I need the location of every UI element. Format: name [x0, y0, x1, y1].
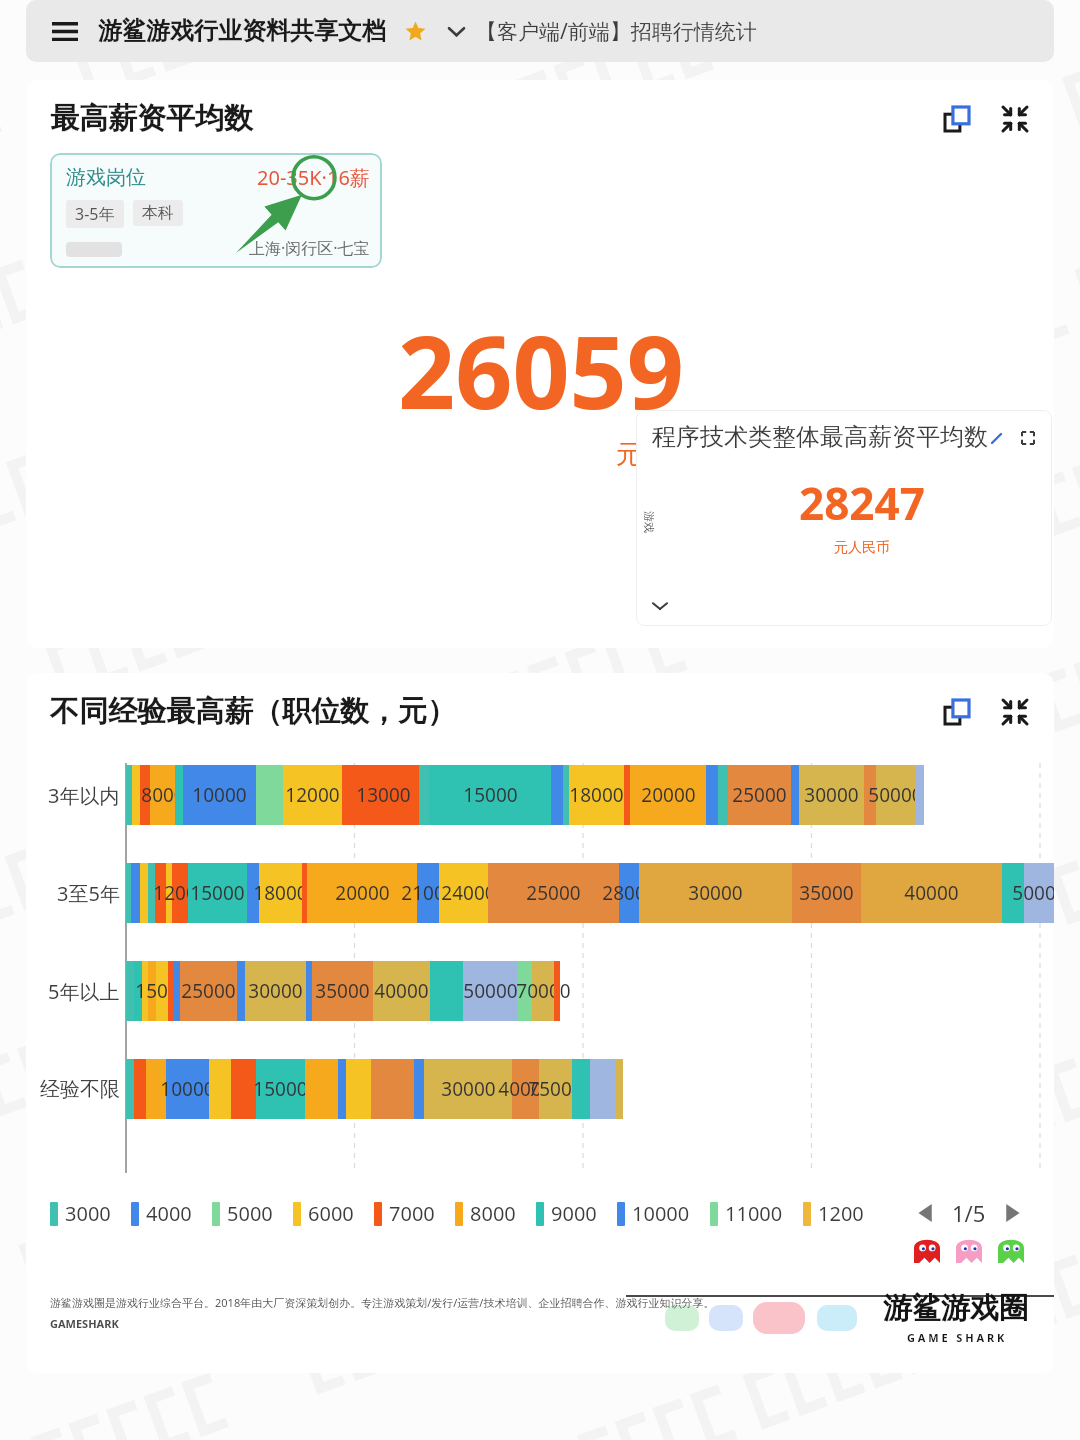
staticText: 25000 [181, 978, 236, 1004]
staticText: 元人民币 [834, 539, 890, 557]
button[interactable]: More options [442, 17, 470, 45]
staticText: 3000 [65, 1200, 111, 1227]
staticText: 35000 [315, 978, 370, 1004]
staticText: 10000 [632, 1200, 690, 1227]
staticText: 30000 [688, 880, 743, 906]
staticText: 75000 [528, 1076, 583, 1102]
staticText: 50000 [868, 782, 923, 808]
button[interactable]: Collapse [996, 693, 1034, 731]
staticText: 28000 [602, 880, 657, 906]
button[interactable]: 3000 [50, 1200, 131, 1227]
staticText: 5年以上 [48, 978, 120, 1005]
staticText: 20-35K·16薪 [257, 164, 370, 191]
staticText: 15000 [190, 880, 245, 906]
staticText: 9000 [551, 1200, 597, 1227]
button[interactable]: Menu [44, 10, 86, 52]
staticText: 24000 [441, 880, 496, 906]
staticText: 35000 [799, 880, 854, 906]
staticText: 游鲨游戏圈是游戏行业综合平台。2018年由大厂资深策划创办。专注游戏策划/发行/… [50, 1295, 715, 1310]
button[interactable]: Next page [994, 1195, 1030, 1231]
button[interactable]: Favorite [400, 16, 430, 46]
button[interactable]: 4000 [131, 1200, 212, 1227]
staticText: 最高薪资平均数 [50, 100, 253, 137]
staticText: 7000 [389, 1200, 435, 1227]
button[interactable]: Collapse [996, 100, 1034, 138]
staticText: 不同经验最高薪（职位数，元） [50, 693, 456, 730]
staticText: 游鲨游戏行业资料共享文档 [98, 16, 386, 46]
staticText: 12000 [153, 880, 208, 906]
button[interactable]: 10000 [617, 1200, 710, 1227]
button[interactable]: 游戏岗位 [50, 153, 382, 268]
button[interactable]: Previous page [908, 1195, 944, 1231]
staticText: 25000 [526, 880, 581, 906]
staticText: 1/5 [952, 1198, 986, 1228]
button[interactable]: 1200 [803, 1200, 884, 1227]
staticText: 游戏岗位 [66, 165, 146, 190]
staticText: 1200 [818, 1200, 864, 1227]
button[interactable]: 6000 [293, 1200, 374, 1227]
button[interactable]: 7000 [374, 1200, 455, 1227]
staticText: 经验不限 [40, 1077, 120, 1102]
staticText: 13000 [356, 782, 411, 808]
staticText: 3-5年 [75, 203, 115, 225]
button[interactable]: 9000 [536, 1200, 617, 1227]
staticText: 3年以内 [48, 782, 120, 809]
staticText: 30000 [248, 978, 303, 1004]
staticText: 上海·闵行区·七宝 [249, 237, 370, 259]
staticText: 6000 [308, 1200, 354, 1227]
staticText: 20000 [335, 880, 390, 906]
staticText: 21000 [401, 880, 456, 906]
staticText: 【客户端/前端】招聘行情统计 [476, 17, 757, 46]
staticText: 游戏岗位数据表（源文件） [642, 511, 656, 537]
staticText: 8000 [470, 1200, 516, 1227]
staticText: 3至5年 [57, 880, 120, 907]
staticText: 40000 [498, 1076, 553, 1102]
staticText: 15000 [135, 978, 190, 1004]
staticText: 30000 [441, 1076, 496, 1102]
staticText: 26059 [398, 302, 684, 438]
button[interactable]: Copy [938, 693, 976, 731]
staticText: 18000 [569, 782, 624, 808]
staticText: 70000 [516, 978, 571, 1004]
button[interactable]: Link [986, 428, 1006, 448]
staticText: 28247 [799, 473, 925, 533]
staticText: 40000 [374, 978, 429, 1004]
staticText: 游鲨游戏圈 [883, 1290, 1028, 1327]
staticText: 40000 [904, 880, 959, 906]
staticText: 25000 [732, 782, 787, 808]
staticText: 程序技术类整体最高薪资平均数 [652, 422, 988, 452]
staticText: 10000 [192, 782, 247, 808]
staticText: GAMESHARK [50, 1316, 119, 1331]
staticText: 11000 [725, 1200, 783, 1227]
staticText: 50000 [463, 978, 518, 1004]
staticText: G A M E S H A R K [907, 1330, 1005, 1345]
button[interactable]: 5000 [212, 1200, 293, 1227]
staticText: 本科 [142, 203, 174, 223]
staticText: 8000 [141, 782, 185, 808]
staticText: 10000 [160, 1076, 215, 1102]
staticText: 元人民币 [616, 438, 720, 471]
staticText: 15000 [463, 782, 518, 808]
button[interactable]: Show more [648, 594, 672, 618]
staticText: 50000 [1012, 880, 1054, 906]
staticText: 30000 [804, 782, 859, 808]
staticText: 5000 [227, 1200, 273, 1227]
button[interactable]: 8000 [455, 1200, 536, 1227]
button[interactable]: 11000 [710, 1200, 803, 1227]
staticText: 4000 [146, 1200, 192, 1227]
button[interactable]: Expand [1018, 428, 1038, 448]
staticText: 12000 [285, 782, 340, 808]
staticText: 20000 [641, 782, 696, 808]
staticText: 15000 [253, 1076, 308, 1102]
staticText: 18000 [253, 880, 308, 906]
button[interactable]: Copy [938, 100, 976, 138]
